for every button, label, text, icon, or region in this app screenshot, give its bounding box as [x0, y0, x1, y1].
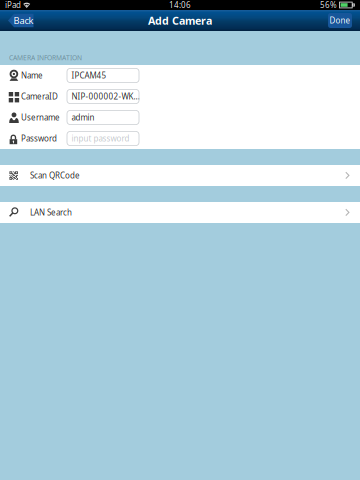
staticText: CAMERA INFORMATION [9, 53, 82, 62]
staticText: Scan QRCode [30, 170, 80, 181]
staticText: admin [71, 112, 94, 123]
button[interactable]: Scan QRCode [0, 165, 360, 186]
staticText: input password [71, 133, 129, 144]
staticText: 14:06 [169, 0, 191, 10]
staticText: Done [329, 15, 350, 26]
button[interactable]: Done [328, 13, 352, 28]
staticText: Add Camera [148, 13, 212, 28]
staticText: 56% [320, 0, 337, 10]
button[interactable]: Back [8, 13, 34, 28]
staticText: Back [13, 14, 33, 27]
staticText: Username [21, 112, 60, 123]
staticText: IPCAM45 [71, 70, 106, 81]
staticText: iPad [5, 0, 21, 10]
button[interactable]: LAN Search [0, 202, 360, 223]
staticText: Password [21, 133, 57, 144]
staticText: Name [21, 70, 43, 81]
staticText: LAN Search [30, 207, 72, 218]
staticText: NIP-000002-WKL... [71, 91, 139, 102]
staticText: CameraID [21, 91, 58, 102]
